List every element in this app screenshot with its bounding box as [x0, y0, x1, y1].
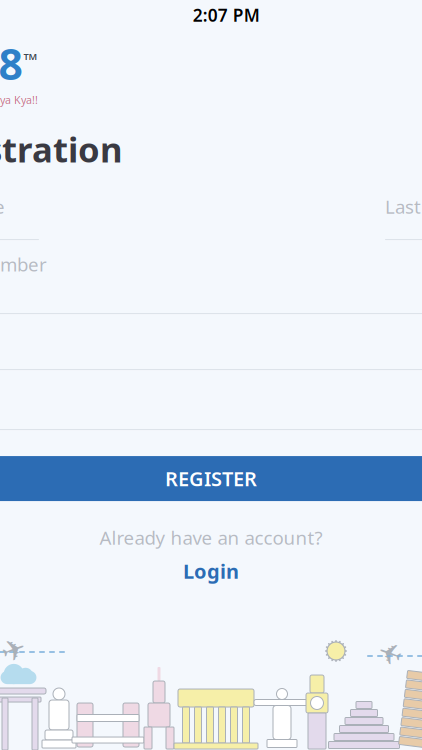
staticText: ✈ [377, 636, 402, 670]
staticText: Last Name [385, 194, 422, 219]
staticText: ✈ [1, 633, 26, 667]
staticText: Login [183, 558, 239, 584]
staticText: Registration [0, 126, 123, 172]
staticText: 8 [0, 35, 22, 92]
staticText: Already have an account? [99, 525, 322, 550]
button[interactable]: Login [171, 554, 251, 588]
button[interactable]: REGISTER [0, 456, 422, 501]
staticText: Mobile Number [0, 252, 47, 277]
staticText: TM [23, 50, 37, 63]
staticText: REGISTER [165, 465, 257, 492]
staticText: Compare Kiya Kya!! [0, 93, 38, 107]
staticText: First Name [0, 194, 5, 219]
staticText: 2:07 PM [193, 3, 260, 26]
